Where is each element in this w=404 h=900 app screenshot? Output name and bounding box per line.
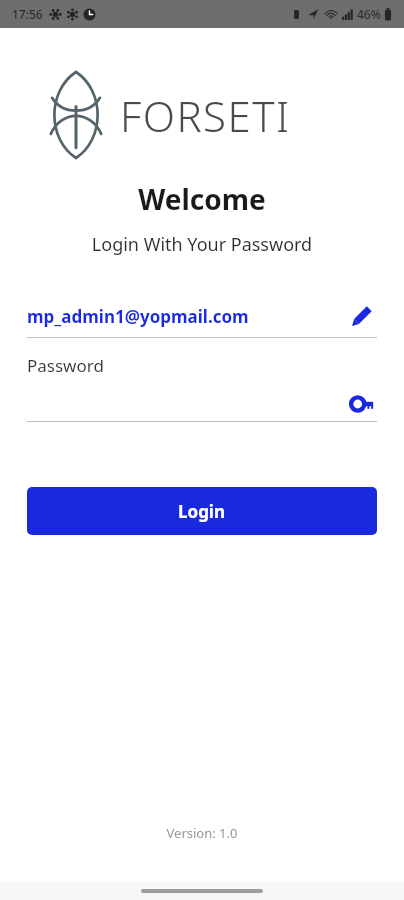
button[interactable]: Password (27, 354, 377, 422)
staticText: Welcome (0, 180, 404, 218)
staticText: 17:56 (12, 6, 43, 22)
staticText: mp_admin1@yopmail.com (27, 305, 249, 328)
button[interactable]: mp_admin1@yopmail.com (27, 299, 377, 338)
button[interactable]: Login (27, 487, 377, 535)
staticText: Version: 1.0 (0, 824, 404, 842)
staticText: Login With Your Password (0, 232, 404, 257)
staticText: FORSETI (120, 87, 291, 144)
button[interactable]: Show password (349, 390, 377, 418)
staticText: 46% (357, 6, 381, 22)
button[interactable]: Edit email (347, 301, 377, 331)
staticText: Login (178, 500, 226, 523)
staticText: Password (27, 354, 104, 377)
